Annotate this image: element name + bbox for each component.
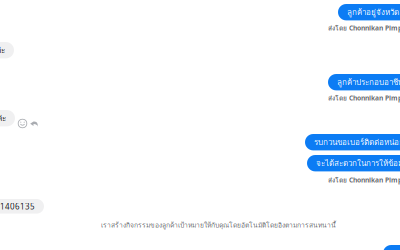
staticText: ส่งโดย Chonnikan Pimpa	[328, 23, 400, 33]
staticText: ค้าขายค่ะ	[0, 112, 6, 124]
staticText: ส่งโดย Chonnikan Pimpa	[328, 175, 400, 185]
staticText: 0841406135	[0, 201, 35, 212]
button[interactable]: รบกวนขอเบอร์ติดต่อหน่อยค่ะ	[305, 134, 400, 150]
button[interactable]: จะได้สะดวกในการให้ข้อมูลค่ะ	[307, 155, 400, 171]
button[interactable]: Reply	[30, 119, 38, 127]
button[interactable]: Add reaction	[17, 118, 28, 129]
staticText: เราสร้างกิจกรรมของลูกค้าเป้าหมายให้กับคุ…	[101, 220, 336, 230]
staticText: จะได้สะดวกในการให้ข้อมูลค่ะ	[316, 157, 400, 169]
staticText: รบกวนขอเบอร์ติดต่อหน่อยค่ะ	[314, 136, 400, 148]
staticText: ลูกค้าอยู่จังหวัดอะไรคะ	[347, 6, 400, 18]
staticText: ส่งโดย Chonnikan Pimpa	[328, 93, 400, 103]
button[interactable]: ลูกค้าประกอบอาชีพอะไรคะ	[328, 74, 400, 90]
button[interactable]: 0841406135	[0, 199, 44, 214]
button[interactable]: ค้าขายค่ะ	[0, 110, 15, 126]
staticText: ชลบุรีค่ะ	[0, 44, 5, 56]
staticText: ลูกค้าประกอบอาชีพอะไรคะ	[337, 76, 400, 88]
button[interactable]: ลูกค้าอยู่จังหวัดอะไรคะ	[338, 4, 400, 20]
button[interactable]: ชลบุรีค่ะ	[0, 42, 14, 58]
button[interactable]: ขอบคุณค่ะ	[383, 245, 400, 250]
